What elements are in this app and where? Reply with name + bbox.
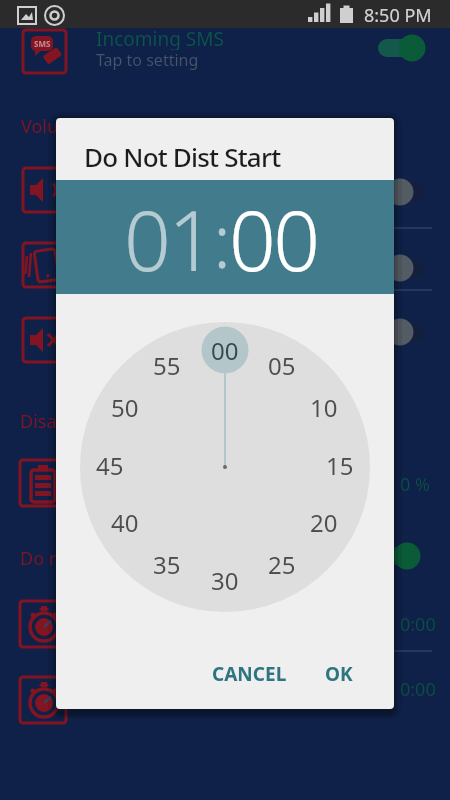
staticText: 25 — [268, 548, 296, 576]
staticText: Volume — [21, 114, 86, 139]
staticText: Incoming SMS — [96, 26, 224, 50]
staticText: OK — [325, 661, 353, 687]
staticText: 15 — [326, 449, 354, 477]
button[interactable]: 50 — [103, 391, 147, 419]
staticText: 35 — [153, 548, 181, 576]
button[interactable]: 00 — [203, 334, 247, 362]
button[interactable]: 30 — [203, 564, 247, 592]
button[interactable]: OK — [304, 652, 374, 696]
staticText: 05 — [268, 349, 296, 377]
staticText: 20 — [310, 506, 338, 534]
staticText: 00 — [229, 183, 318, 295]
button[interactable]: 45 — [88, 449, 132, 477]
button[interactable]: 05 — [260, 349, 304, 377]
button[interactable]: 25 — [260, 548, 304, 576]
staticText: 00 — [211, 334, 239, 362]
button[interactable] — [0, 28, 450, 76]
staticText: SMS — [34, 38, 51, 49]
staticText: 0:00 — [400, 612, 436, 634]
staticText: 45 — [96, 449, 124, 477]
button[interactable]: 35 — [145, 548, 189, 576]
staticText: 01 — [124, 183, 213, 295]
staticText: Do not disturb — [20, 546, 143, 571]
staticText: 50 — [111, 391, 139, 419]
staticText: 0:00 — [400, 677, 436, 699]
staticText: Do Not Dist Start — [84, 139, 281, 174]
button[interactable]: 40 — [103, 506, 147, 534]
staticText: Disable — [20, 409, 83, 434]
staticText: 40 — [111, 506, 139, 534]
button[interactable]: CANCEL — [194, 652, 304, 696]
staticText: CANCEL — [212, 661, 287, 687]
staticText: : — [213, 189, 229, 290]
staticText: 55 — [153, 349, 181, 377]
staticText: 10 — [310, 391, 338, 419]
button[interactable]: 55 — [145, 349, 189, 377]
button[interactable]: 10 — [302, 391, 346, 419]
staticText: Tap to setting — [96, 49, 199, 71]
staticText: 0 % — [400, 472, 430, 494]
staticText: 8:50 PM — [364, 3, 432, 27]
button[interactable]: 15 — [318, 449, 362, 477]
staticText: 30 — [211, 564, 239, 592]
button[interactable]: 20 — [302, 506, 346, 534]
